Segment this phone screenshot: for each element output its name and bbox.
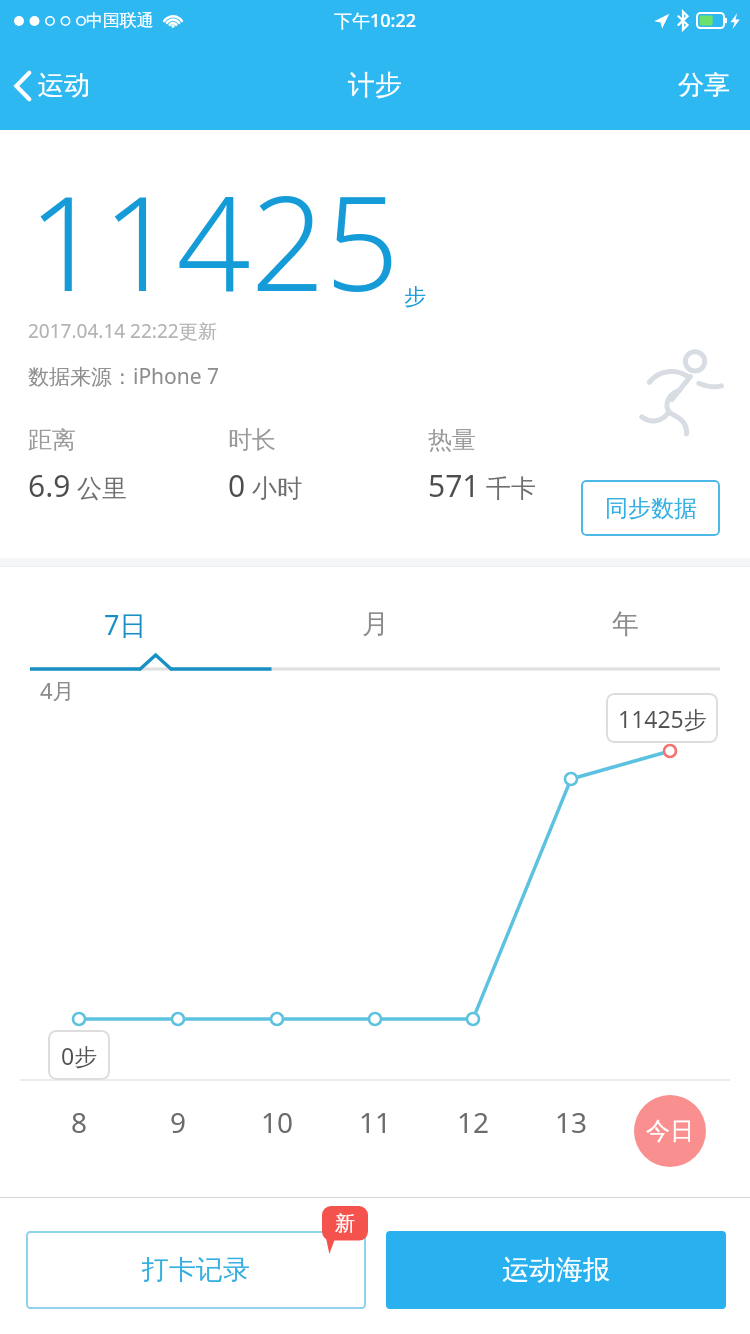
staticText: 数据来源：iPhone 7 xyxy=(28,362,220,391)
staticText: 千卡 xyxy=(486,473,536,504)
staticText: 小时 xyxy=(252,473,302,504)
staticText: 12 xyxy=(457,1103,490,1141)
button[interactable]: 运动海报 xyxy=(386,1231,726,1309)
staticText: 11425步 xyxy=(618,703,707,734)
staticText: 下午10:22 xyxy=(334,8,417,33)
button[interactable]: 8 xyxy=(39,1103,119,1141)
staticText: 7日 xyxy=(104,606,147,643)
staticText: 8 xyxy=(71,1103,88,1141)
staticText: 运动 xyxy=(38,69,90,102)
staticText: 新 xyxy=(335,1211,355,1236)
staticText: 0 xyxy=(228,465,246,506)
staticText: 今日 xyxy=(646,1116,694,1146)
staticText: 打卡记录 xyxy=(142,1253,250,1287)
staticText: 中国联通 xyxy=(86,10,154,31)
staticText: 距离 xyxy=(28,425,76,455)
button[interactable]: 12 xyxy=(433,1103,513,1141)
staticText: 时长 xyxy=(228,425,276,455)
staticText: 6.9 xyxy=(28,465,71,506)
button[interactable]: 9 xyxy=(138,1103,218,1141)
staticText: 热量 xyxy=(428,425,476,455)
button[interactable]: 13 xyxy=(531,1103,611,1141)
staticText: 运动海报 xyxy=(502,1253,610,1287)
staticText: 2017.04.14 22:22更新 xyxy=(28,318,217,344)
button[interactable]: 打卡记录 xyxy=(26,1231,366,1309)
staticText: 11 xyxy=(359,1103,392,1141)
staticText: 计步 xyxy=(348,68,402,102)
staticText: 11425 xyxy=(28,152,400,329)
staticText: 13 xyxy=(555,1103,588,1141)
button[interactable]: 分享 xyxy=(658,59,750,112)
button[interactable]: 运动 xyxy=(0,59,106,112)
button[interactable]: 年 xyxy=(500,567,750,661)
button[interactable]: 同步数据 xyxy=(581,480,720,536)
staticText: 9 xyxy=(170,1103,187,1141)
staticText: 步 xyxy=(404,283,426,311)
staticText: 4月 xyxy=(40,675,75,705)
button[interactable]: 7日 xyxy=(0,567,250,661)
button[interactable]: 月 xyxy=(250,567,500,661)
staticText: 10 xyxy=(261,1103,294,1141)
button[interactable]: 11 xyxy=(335,1103,415,1141)
staticText: 571 xyxy=(428,465,480,506)
staticText: 月 xyxy=(362,607,389,641)
staticText: 公里 xyxy=(77,473,127,504)
button[interactable]: 今日 xyxy=(634,1095,706,1167)
other: Running xyxy=(640,348,724,434)
staticText: 年 xyxy=(612,607,639,641)
button[interactable]: 10 xyxy=(237,1103,317,1141)
staticText: 分享 xyxy=(678,69,730,102)
staticText: 同步数据 xyxy=(605,494,697,523)
staticText: 0步 xyxy=(61,1040,98,1071)
